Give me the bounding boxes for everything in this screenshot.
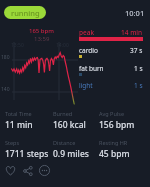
button[interactable]: Favorite: [2, 162, 19, 179]
staticText: 14:00: [56, 42, 69, 49]
staticText: 13:59: [34, 35, 50, 43]
button[interactable]: 10:01: [125, 8, 145, 18]
button[interactable]: More options: [36, 162, 53, 179]
button[interactable]: Steps: [5, 139, 49, 160]
staticText: 37 s: [130, 46, 143, 55]
staticText: peak: [79, 28, 95, 37]
button[interactable]: Distance: [53, 139, 89, 160]
staticText: cardio: [79, 46, 98, 55]
staticText: light: [79, 81, 93, 90]
staticText: 160 kcal: [53, 119, 86, 131]
staticText: 14 min: [121, 28, 143, 37]
staticText: 180: [1, 54, 10, 61]
staticText: 1 s: [134, 64, 143, 73]
staticText: 11 min: [5, 119, 33, 131]
button[interactable]: running: [4, 6, 46, 19]
staticText: Steps: [5, 139, 20, 146]
button[interactable]: Total Time: [5, 110, 33, 131]
staticText: fat burn: [79, 64, 104, 73]
button[interactable]: Burned: [53, 110, 86, 131]
staticText: 1711 steps: [5, 148, 49, 160]
staticText: running: [11, 8, 40, 18]
staticText: 140: [1, 86, 10, 93]
staticText: 0.9 miles: [53, 148, 89, 160]
staticText: Resting HR: [99, 139, 128, 146]
staticText: 1 s: [134, 81, 143, 90]
staticText: 165 bpm: [29, 27, 54, 35]
staticText: Burned: [53, 110, 73, 117]
button[interactable]: cardio: [79, 46, 143, 55]
staticText: Avg Pulse: [99, 110, 125, 117]
button[interactable]: peak: [79, 28, 143, 37]
staticText: 13:50: [11, 42, 24, 49]
button[interactable]: Resting HR: [99, 139, 130, 160]
staticText: 10:01: [125, 8, 145, 18]
staticText: 156 bpm: [99, 119, 135, 131]
staticText: Distance: [53, 139, 76, 146]
button[interactable]: light: [79, 81, 143, 90]
staticText: Total Time: [5, 110, 32, 117]
staticText: 45 bpm: [99, 148, 130, 160]
button[interactable]: Share: [19, 162, 36, 179]
button[interactable]: Avg Pulse: [99, 110, 135, 131]
button[interactable]: fat burn: [79, 64, 143, 73]
